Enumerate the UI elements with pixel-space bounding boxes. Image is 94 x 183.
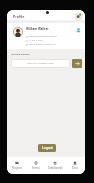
staticText: ONLINE PORTAL (11, 53, 30, 56)
staticText: Profile (13, 14, 25, 19)
staticText: Logout (42, 146, 53, 150)
button[interactable]: William Walker (7, 23, 85, 49)
button[interactable]: enter link or company name (11, 59, 70, 68)
staticText: william.walker@acme.group (29, 35, 57, 38)
button[interactable]: Docs (65, 161, 85, 170)
staticText: Projects (12, 166, 22, 170)
staticText: +1 381 7 4482 (29, 39, 43, 42)
button[interactable]: Account (75, 13, 82, 20)
button[interactable]: Sync (75, 27, 81, 33)
staticText: enter link or company name (27, 62, 54, 65)
button[interactable]: Dashboards (45, 161, 65, 170)
button[interactable]: Open portal (72, 59, 82, 68)
staticText: Active Supplier Crew 2.13.0 (29, 43, 56, 46)
staticText: Docs (72, 166, 78, 170)
staticText: Forms (32, 166, 40, 170)
button[interactable]: Logout (38, 144, 56, 152)
button[interactable]: Projects (7, 161, 26, 170)
staticText: Dashboards (48, 166, 63, 170)
staticText: William Walker (26, 27, 49, 31)
button[interactable]: Forms (26, 161, 45, 170)
